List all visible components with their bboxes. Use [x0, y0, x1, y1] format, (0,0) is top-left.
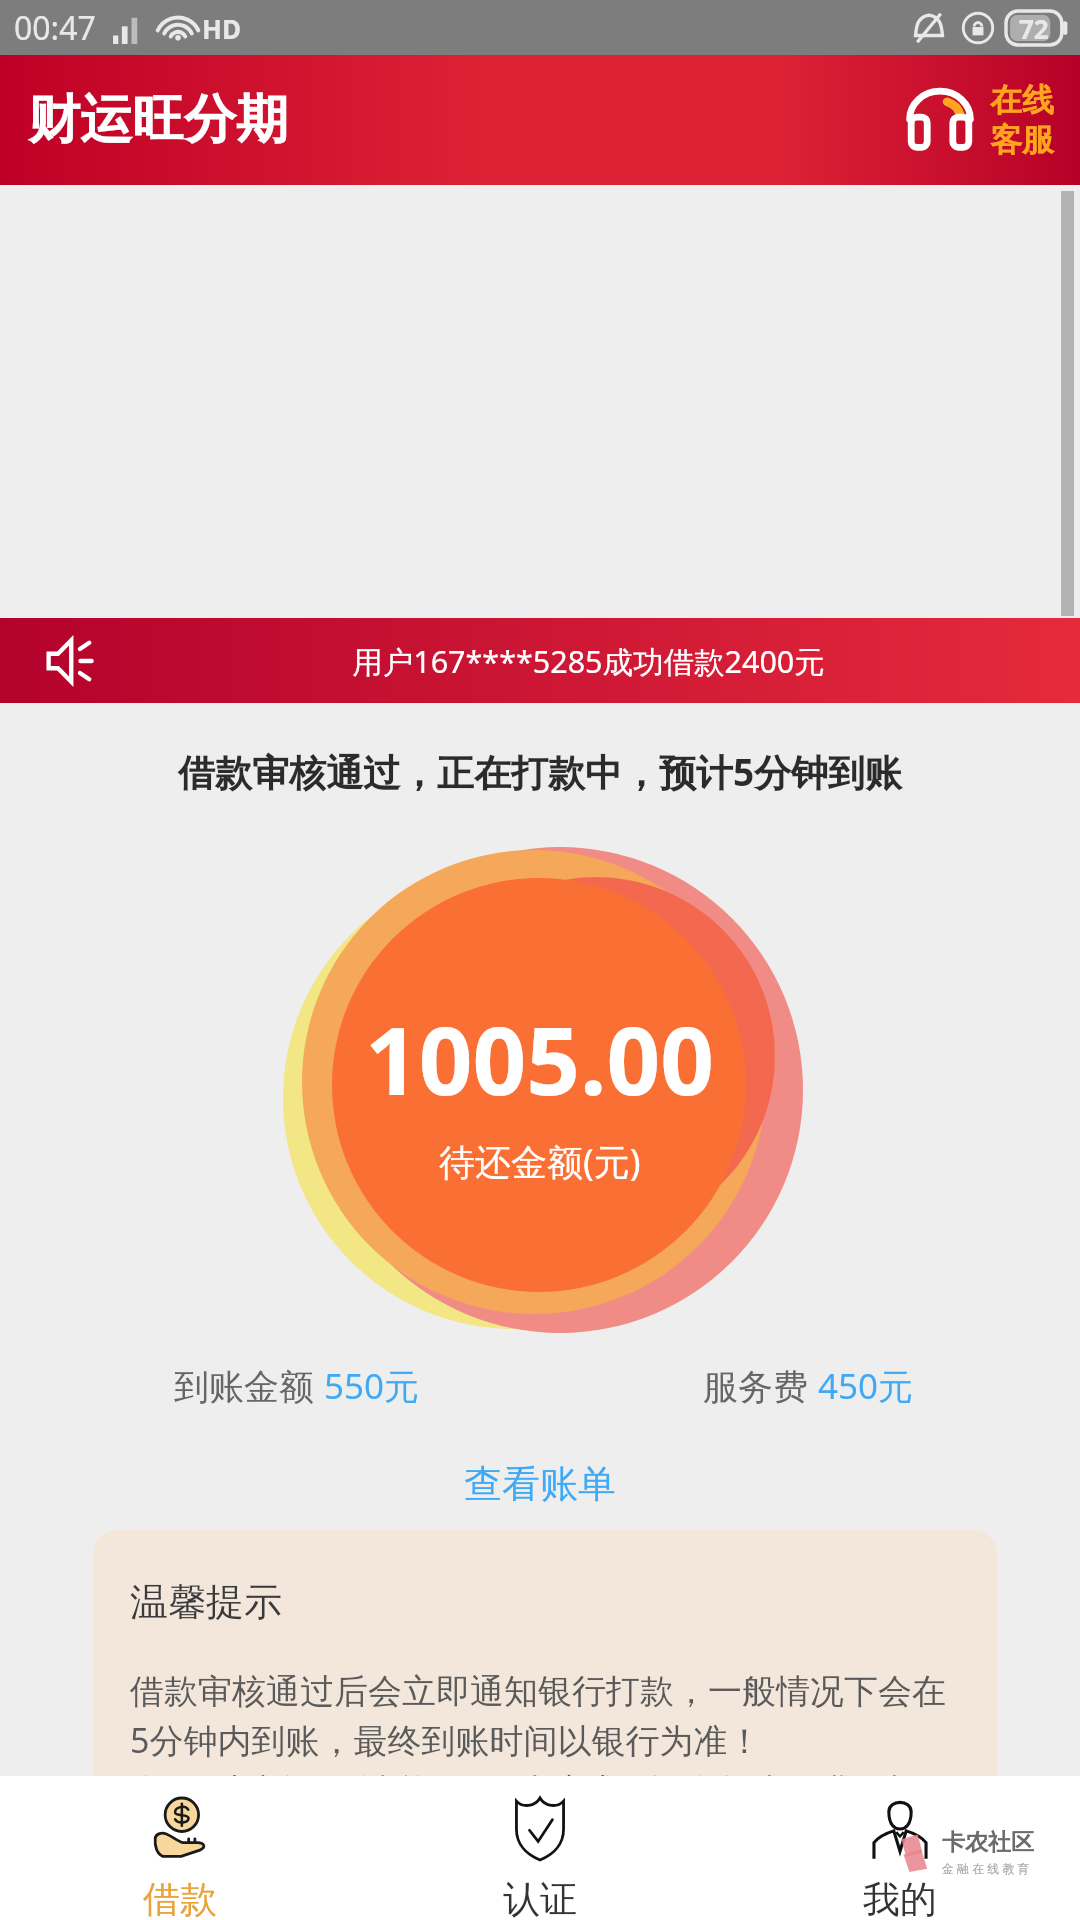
staticText: 在线	[990, 80, 1054, 120]
staticText: 客服	[990, 120, 1054, 160]
staticText: 用户167****5285成功借款2400元	[352, 640, 825, 682]
button[interactable]: 用户167****5285成功借款2400元	[0, 618, 1080, 703]
staticText: 72	[1019, 11, 1049, 45]
staticText: 00:47	[14, 6, 96, 50]
staticText: HD	[202, 11, 241, 46]
staticText: 550元	[324, 1362, 420, 1410]
staticText: 财运旺分期	[28, 87, 288, 153]
staticText: 待还金额(元)	[439, 1137, 641, 1186]
staticText: 温馨提示	[130, 1578, 282, 1626]
staticText: 卡农社区	[942, 1828, 1034, 1857]
staticText: 金 融 在 线 教 育	[942, 1860, 1030, 1876]
staticText: 我的	[863, 1876, 937, 1920]
button[interactable]: 在线	[894, 74, 1060, 166]
button[interactable]: 我的	[720, 1776, 1080, 1920]
staticText: 450元	[818, 1362, 914, 1410]
staticText: 到账金额	[174, 1362, 324, 1410]
button[interactable]: 认证	[360, 1776, 720, 1920]
button[interactable]: 查看账单	[0, 1460, 1080, 1508]
staticText: 服务费	[703, 1362, 818, 1410]
button[interactable]: 借款	[0, 1776, 360, 1920]
staticText: 借款	[143, 1876, 217, 1920]
staticText: 借款审核通过后会立即通知银行打款，一般情况下会在 5分钟内到账，最终到账时间以银…	[130, 1670, 946, 1813]
staticText: 1005.00	[365, 995, 715, 1123]
staticText: 借款审核通过，正在打款中，预计5分钟到账	[0, 746, 1080, 797]
staticText: 认证	[503, 1876, 577, 1920]
